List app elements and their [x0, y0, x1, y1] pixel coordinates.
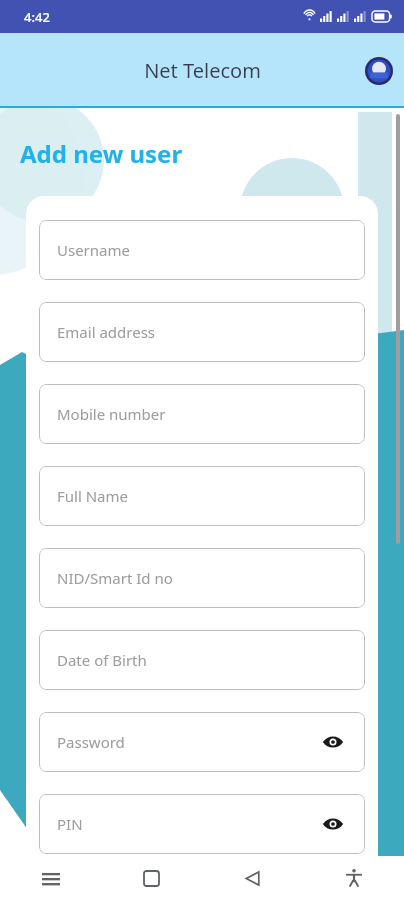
staticText: 4:42 — [24, 8, 50, 26]
button[interactable]: NID/Smart Id no — [39, 548, 365, 608]
button[interactable]: Date of Birth — [39, 630, 365, 690]
staticText: Date of Birth — [57, 650, 147, 670]
button[interactable]: Email address — [39, 302, 365, 362]
button[interactable]: Mobile number — [39, 384, 365, 444]
staticText: PIN — [57, 814, 83, 834]
button[interactable]: Accessibility — [303, 856, 404, 900]
staticText: Full Name — [57, 486, 128, 506]
button[interactable]: Profile — [364, 56, 394, 86]
staticText: Add new user — [20, 137, 183, 170]
button[interactable]: Home — [101, 856, 202, 900]
staticText: Username — [57, 240, 130, 260]
button[interactable]: Back — [202, 856, 303, 900]
staticText: Net Telecom — [144, 57, 261, 84]
staticText: Email address — [57, 322, 156, 342]
button[interactable]: Menu — [0, 856, 101, 900]
staticText: Mobile number — [57, 404, 166, 424]
staticText: Password — [57, 732, 125, 752]
button[interactable]: Username — [39, 220, 365, 280]
button[interactable]: PIN — [39, 794, 365, 854]
staticText: NID/Smart Id no — [57, 568, 173, 588]
button[interactable]: Password — [39, 712, 365, 772]
button[interactable]: Full Name — [39, 466, 365, 526]
button[interactable]: Show Password — [319, 728, 347, 756]
button[interactable]: Show PIN — [319, 810, 347, 838]
